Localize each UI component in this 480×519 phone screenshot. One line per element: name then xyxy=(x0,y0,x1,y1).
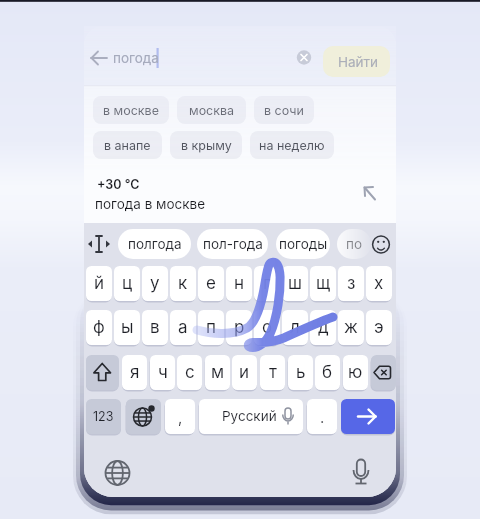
button[interactable] xyxy=(86,355,119,390)
staticText: в москве xyxy=(103,103,159,118)
button[interactable]: й xyxy=(86,266,112,301)
button[interactable]: 123 xyxy=(86,399,121,434)
button[interactable] xyxy=(371,235,391,255)
staticText: москва xyxy=(189,103,235,118)
staticText: о xyxy=(262,317,273,338)
button[interactable]: ж xyxy=(338,310,364,345)
button[interactable]: у xyxy=(142,266,168,301)
button[interactable] xyxy=(371,355,396,390)
staticText: й xyxy=(94,273,105,294)
staticText: пол-года xyxy=(203,236,263,252)
staticText: на неделю xyxy=(259,138,325,153)
button[interactable]: щ xyxy=(310,266,336,301)
button[interactable]: в xyxy=(142,310,168,345)
staticText: щ xyxy=(316,273,331,294)
button[interactable]: д xyxy=(310,310,336,345)
staticText: погода в москве xyxy=(95,196,206,212)
staticText: л xyxy=(290,317,300,338)
staticText: б xyxy=(322,362,333,383)
staticText: т xyxy=(269,362,277,383)
button[interactable]: погоды xyxy=(276,229,330,259)
button[interactable]: п xyxy=(198,310,224,345)
staticText: полгода xyxy=(128,236,182,252)
button[interactable]: . xyxy=(307,399,337,434)
button[interactable]: г xyxy=(254,266,280,301)
button[interactable]: л xyxy=(282,310,308,345)
button[interactable]: т xyxy=(260,355,285,390)
staticText: в xyxy=(150,317,160,338)
button[interactable] xyxy=(294,47,314,67)
button[interactable]: в сочи xyxy=(254,96,314,124)
staticText: ь xyxy=(296,362,306,383)
button[interactable]: ш xyxy=(282,266,308,301)
button[interactable] xyxy=(88,48,110,68)
button[interactable]: москва xyxy=(177,96,246,124)
staticText: г xyxy=(263,273,271,294)
staticText: м xyxy=(211,362,225,383)
button[interactable]: в крыму xyxy=(170,131,242,159)
button[interactable]: а xyxy=(170,310,196,345)
staticText: а xyxy=(178,317,188,338)
staticText: у xyxy=(150,273,160,294)
button[interactable]: , xyxy=(165,399,195,434)
button[interactable] xyxy=(199,399,303,434)
button[interactable]: в анапе xyxy=(93,131,162,159)
button[interactable]: ю xyxy=(343,355,368,390)
staticText: е xyxy=(206,273,216,294)
button[interactable]: б xyxy=(315,355,340,390)
staticText: в сочи xyxy=(264,103,304,118)
button[interactable]: з xyxy=(338,266,364,301)
staticText: к xyxy=(178,273,188,294)
staticText: ю xyxy=(348,362,363,383)
staticText: р xyxy=(234,317,245,338)
button[interactable]: ы xyxy=(114,310,140,345)
button[interactable] xyxy=(95,173,385,217)
staticText: э xyxy=(374,317,384,338)
staticText: ч xyxy=(158,362,168,383)
button[interactable]: м xyxy=(205,355,230,390)
button[interactable] xyxy=(323,46,390,77)
staticText: ф xyxy=(93,317,105,338)
staticText: в крыму xyxy=(181,138,232,153)
button[interactable]: н xyxy=(226,266,252,301)
staticText: н xyxy=(234,273,245,294)
staticText: я xyxy=(130,362,140,383)
staticText: и xyxy=(239,362,250,383)
button[interactable]: э xyxy=(366,310,392,345)
button[interactable]: ц xyxy=(114,266,140,301)
staticText: с xyxy=(185,362,195,383)
button[interactable]: х xyxy=(366,266,392,301)
staticText: Найти xyxy=(338,54,379,70)
button[interactable]: с xyxy=(177,355,202,390)
staticText: д xyxy=(318,317,329,338)
button[interactable]: я xyxy=(122,355,147,390)
staticText: погода xyxy=(113,50,159,66)
button[interactable]: и xyxy=(232,355,257,390)
staticText: з xyxy=(347,273,356,294)
button[interactable]: р xyxy=(226,310,252,345)
staticText: ш xyxy=(288,273,302,294)
staticText: +30 °C xyxy=(97,177,140,192)
staticText: ц xyxy=(122,273,133,294)
button[interactable] xyxy=(348,458,374,486)
staticText: х xyxy=(374,273,384,294)
staticText: погоды xyxy=(279,236,328,252)
button[interactable]: е xyxy=(198,266,224,301)
button[interactable]: ч xyxy=(150,355,175,390)
button[interactable]: ь xyxy=(288,355,313,390)
button[interactable] xyxy=(341,399,395,434)
button[interactable]: ф xyxy=(86,310,112,345)
staticText: п xyxy=(206,317,216,338)
button[interactable]: пол-года xyxy=(197,229,268,259)
button[interactable]: в москве xyxy=(93,96,169,124)
button[interactable] xyxy=(126,399,161,434)
button[interactable]: полгода xyxy=(118,229,191,259)
button[interactable]: о xyxy=(254,310,280,345)
button[interactable] xyxy=(87,233,113,255)
staticText: 123 xyxy=(93,409,114,424)
button[interactable] xyxy=(104,460,131,487)
button[interactable]: к xyxy=(170,266,196,301)
button[interactable]: по xyxy=(337,229,371,259)
staticText: в анапе xyxy=(104,138,151,153)
button[interactable]: на неделю xyxy=(250,131,334,159)
